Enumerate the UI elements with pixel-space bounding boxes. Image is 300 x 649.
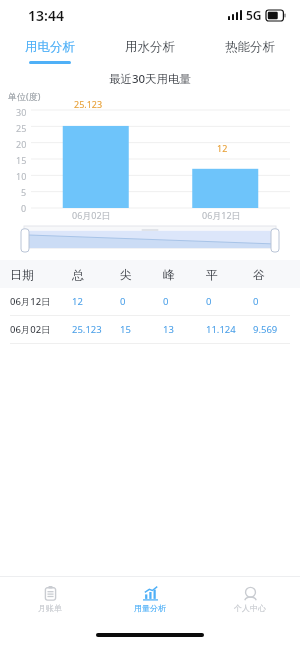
- staticText: 06月12日: [202, 209, 241, 220]
- button[interactable]: 月账单: [0, 577, 100, 621]
- staticText: 月账单: [38, 603, 62, 613]
- staticText: 尖: [120, 267, 132, 282]
- staticText: 单位(度): [8, 90, 41, 102]
- button[interactable]: 用量分析: [100, 577, 200, 621]
- staticText: 用电分析: [25, 39, 75, 55]
- staticText: 15: [120, 323, 131, 336]
- staticText: 06月12日: [10, 295, 51, 308]
- staticText: 0: [21, 202, 27, 214]
- staticText: 日期: [10, 267, 34, 282]
- staticText: 25.123: [74, 98, 103, 110]
- staticText: 12: [72, 295, 83, 308]
- staticText: 5: [21, 186, 27, 198]
- staticText: 15: [16, 154, 27, 166]
- staticText: 13:44: [28, 6, 64, 25]
- staticText: 10: [16, 170, 27, 182]
- staticText: 30: [16, 106, 27, 118]
- staticText: 用量分析: [134, 603, 166, 613]
- staticText: 0: [163, 295, 169, 308]
- staticText: 个人中心: [234, 603, 266, 613]
- staticText: 13: [163, 323, 174, 336]
- button[interactable]: 用电分析: [0, 30, 100, 64]
- staticText: 11.124: [206, 323, 236, 336]
- staticText: 9.569: [253, 323, 278, 336]
- staticText: 0: [120, 295, 126, 308]
- staticText: 谷: [253, 267, 265, 282]
- button[interactable]: 热能分析: [200, 30, 300, 64]
- staticText: 热能分析: [225, 39, 275, 55]
- button[interactable]: 个人中心: [200, 577, 300, 621]
- button[interactable]: 用水分析: [100, 30, 200, 64]
- staticText: 25.123: [72, 323, 102, 336]
- staticText: 0: [253, 295, 259, 308]
- staticText: 20: [16, 138, 27, 150]
- staticText: 最近30天用电量: [0, 71, 300, 87]
- staticText: 5G: [246, 7, 262, 23]
- staticText: 06月02日: [72, 209, 111, 220]
- staticText: 总: [72, 267, 84, 282]
- staticText: 用水分析: [125, 39, 175, 55]
- button[interactable]: 06月12日: [0, 288, 300, 315]
- staticText: 12: [217, 142, 228, 154]
- staticText: 平: [206, 267, 218, 282]
- staticText: 06月02日: [10, 323, 51, 336]
- staticText: 0: [206, 295, 212, 308]
- staticText: 25: [16, 122, 27, 134]
- button[interactable]: 06月02日: [0, 316, 300, 343]
- staticText: 峰: [163, 267, 175, 282]
